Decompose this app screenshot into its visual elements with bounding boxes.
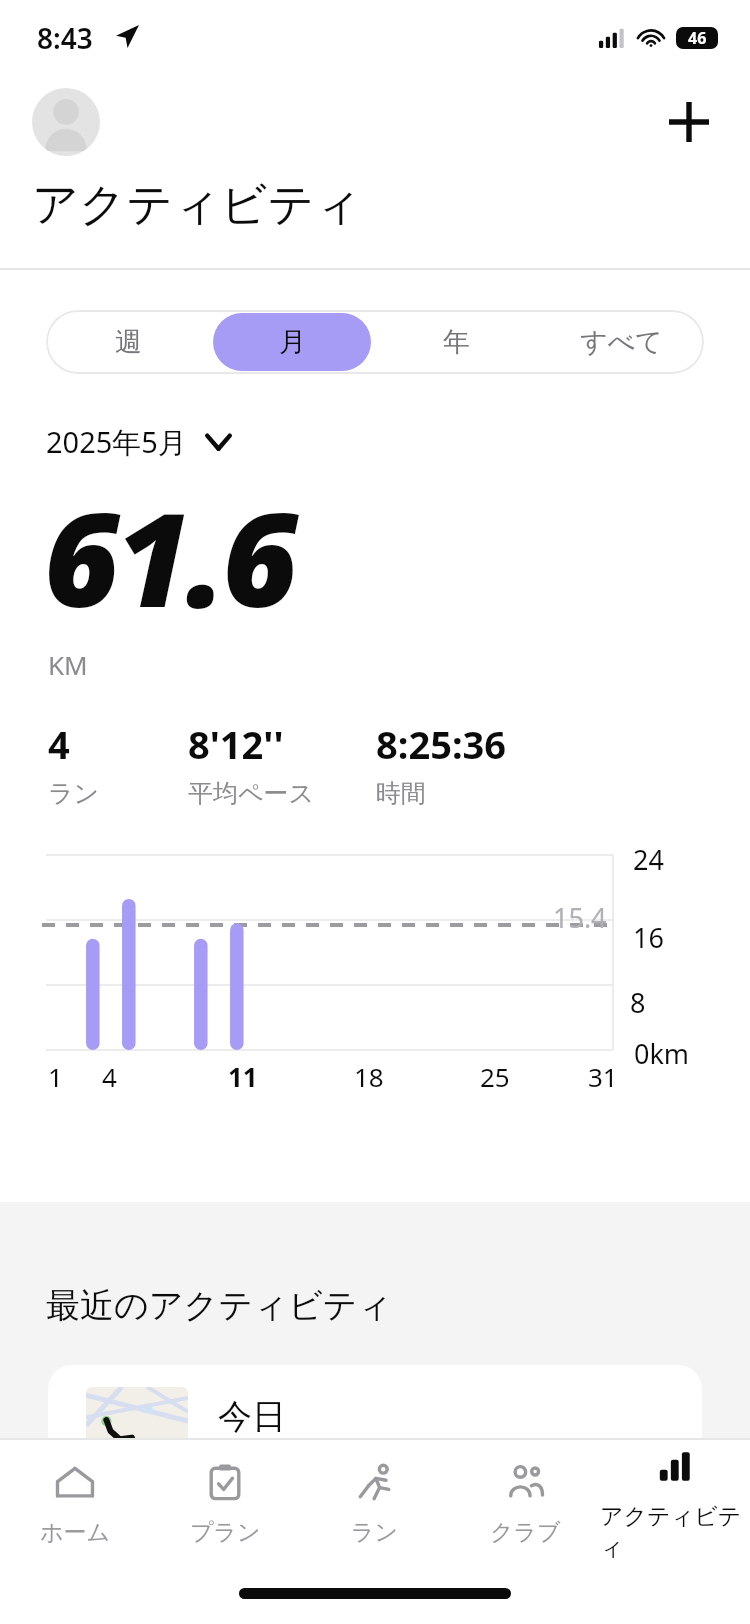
staticText: プラン xyxy=(190,1518,261,1547)
staticText: 11 xyxy=(228,1059,258,1094)
staticText: 4 xyxy=(102,1059,117,1094)
button[interactable]: Profile xyxy=(32,88,100,156)
button[interactable]: Add activity xyxy=(656,89,722,155)
staticText: 2025年5月 xyxy=(46,422,187,462)
button[interactable]: アクティビティ xyxy=(600,1440,750,1566)
staticText: 今日 xyxy=(218,1395,286,1438)
staticText: 最近のアクティビティ xyxy=(46,1284,393,1327)
staticText: 8'12'' xyxy=(188,718,284,770)
staticText: KM xyxy=(48,647,88,682)
staticText: ホーム xyxy=(40,1518,111,1547)
staticText: 1 xyxy=(48,1059,63,1094)
staticText: 0km xyxy=(634,1035,690,1072)
staticText: 25 xyxy=(480,1059,510,1094)
button[interactable]: 月 xyxy=(213,313,371,371)
staticText: 15.4 xyxy=(553,899,607,936)
button[interactable]: ホーム xyxy=(0,1440,150,1566)
staticText: 61.6 xyxy=(44,468,294,645)
staticText: ラン xyxy=(48,778,100,809)
staticText: 31 xyxy=(588,1059,618,1094)
button[interactable]: すべて xyxy=(542,313,701,371)
staticText: クラブ xyxy=(490,1518,561,1547)
button[interactable]: ラン xyxy=(300,1440,450,1566)
button[interactable]: 年 xyxy=(377,313,536,371)
staticText: すべて xyxy=(580,325,663,359)
staticText: 16 xyxy=(633,919,664,956)
staticText: 8 xyxy=(630,984,646,1021)
button[interactable]: 今日 xyxy=(48,1365,702,1442)
staticText: 24 xyxy=(633,841,664,878)
staticText: 8:25:36 xyxy=(376,718,507,770)
staticText: ラン xyxy=(351,1518,399,1547)
staticText: 4 xyxy=(48,718,70,770)
staticText: 月 xyxy=(279,325,306,359)
staticText: 年 xyxy=(443,325,470,359)
staticText: 時間 xyxy=(376,778,426,809)
button[interactable]: 2025年5月 xyxy=(46,422,232,462)
button[interactable]: 週 xyxy=(49,313,207,371)
staticText: アクティビティ xyxy=(32,176,362,234)
button[interactable]: クラブ xyxy=(450,1440,600,1566)
staticText: 46 xyxy=(688,27,707,49)
staticText: 18 xyxy=(354,1059,384,1094)
staticText: アクティビティ xyxy=(600,1502,750,1562)
staticText: 週 xyxy=(115,325,142,359)
staticText: 8:43 xyxy=(37,19,93,57)
staticText: 平均ペース xyxy=(188,778,315,809)
button[interactable]: プラン xyxy=(150,1440,300,1566)
